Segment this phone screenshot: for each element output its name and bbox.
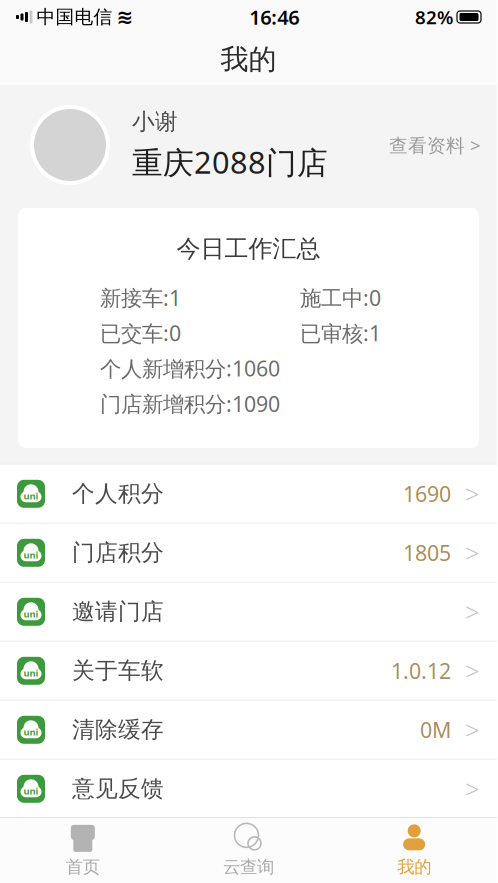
staticText: 我的 xyxy=(397,856,431,878)
button[interactable]: uni xyxy=(0,642,497,701)
staticText: 16:46 xyxy=(249,4,299,30)
staticText: 门店积分 xyxy=(72,539,164,567)
staticText: uni xyxy=(23,726,38,738)
staticText: 中国电信 xyxy=(36,5,112,28)
staticText: 邀请门店 xyxy=(72,598,164,626)
staticText: 82% xyxy=(415,5,453,29)
button[interactable]: 我的 xyxy=(331,823,497,878)
staticText: 云查询 xyxy=(223,856,274,878)
button[interactable]: uni xyxy=(0,701,497,760)
button[interactable]: uni xyxy=(0,583,497,642)
staticText: 已交车:0 xyxy=(100,319,181,347)
staticText: uni xyxy=(23,785,38,797)
staticText: 我的 xyxy=(220,42,276,77)
button[interactable]: uni xyxy=(0,465,497,524)
staticText: 重庆2088门店 xyxy=(132,142,328,182)
button[interactable]: 云查询 xyxy=(166,823,331,878)
staticText: > xyxy=(465,595,479,629)
staticText: 意见反馈 xyxy=(72,775,164,803)
staticText: uni xyxy=(23,667,38,679)
staticText: > xyxy=(465,536,479,570)
button[interactable]: 首页 xyxy=(0,823,166,878)
staticText: 0M xyxy=(420,716,451,744)
staticText: uni xyxy=(23,608,38,620)
staticText: > xyxy=(465,654,479,688)
staticText: 施工中:0 xyxy=(300,283,381,312)
staticText: 新接车:1 xyxy=(100,283,181,312)
staticText: 1690 xyxy=(403,480,451,508)
staticText: 门店新增积分:1090 xyxy=(100,389,280,418)
staticText: 关于车软 xyxy=(72,657,164,685)
staticText: 小谢 xyxy=(132,108,178,135)
button[interactable]: uni xyxy=(0,524,497,583)
staticText: > xyxy=(465,477,479,511)
staticText: 1805 xyxy=(403,539,451,567)
staticText: 个人积分 xyxy=(72,480,164,508)
button[interactable]: uni xyxy=(0,760,497,819)
staticText: 1.0.12 xyxy=(391,657,451,685)
staticText: > xyxy=(465,772,479,806)
staticText: 首页 xyxy=(66,856,100,878)
staticText: 查看资料 > xyxy=(389,133,481,157)
staticText: 个人新增积分:1060 xyxy=(100,354,280,382)
staticText: ≋ xyxy=(116,6,133,28)
staticText: uni xyxy=(23,549,38,561)
staticText: > xyxy=(465,713,479,747)
staticText: 清除缓存 xyxy=(72,716,164,744)
staticText: uni xyxy=(23,490,38,502)
button[interactable]: 小谢 xyxy=(0,85,497,205)
staticText: 今日工作汇总 xyxy=(176,234,320,263)
staticText: 已审核:1 xyxy=(300,319,381,347)
